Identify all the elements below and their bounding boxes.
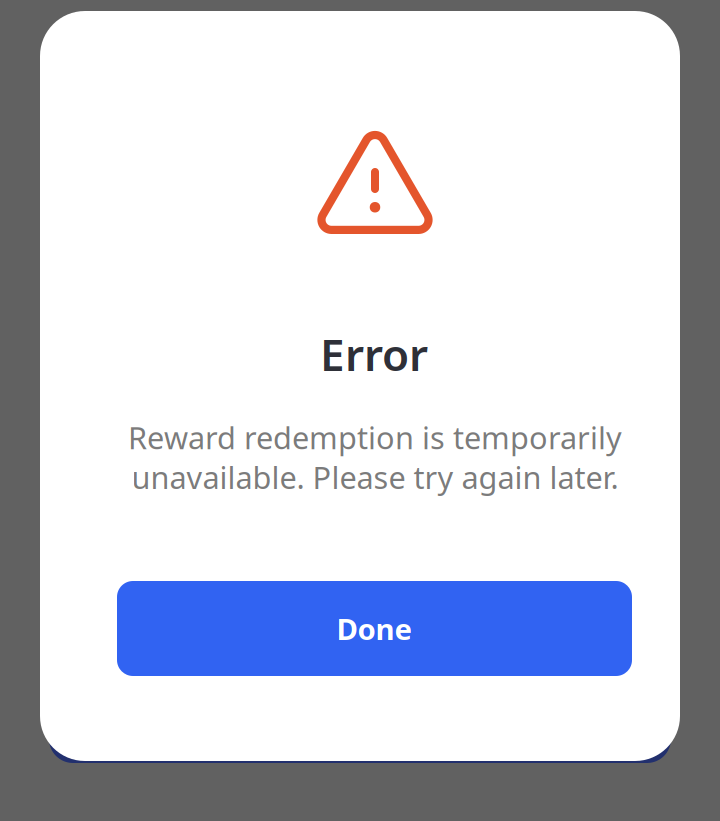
- staticText: unavailable. Please try again later.: [131, 457, 618, 497]
- button[interactable]: Done: [117, 581, 632, 676]
- staticText: Reward redemption is temporarily: [128, 417, 622, 458]
- staticText: Done: [336, 609, 412, 648]
- staticText: Error: [320, 325, 428, 383]
